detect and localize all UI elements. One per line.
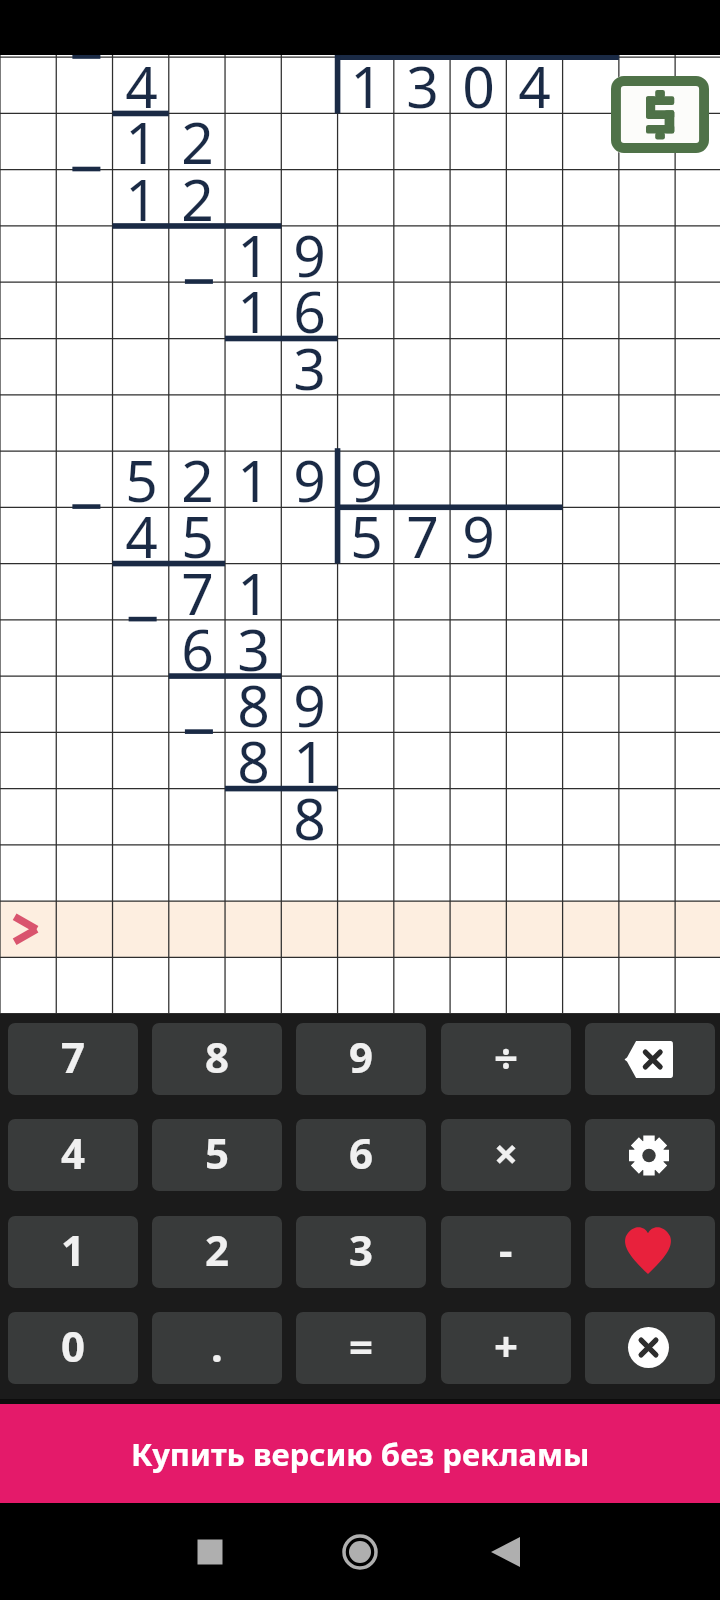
button[interactable]: 3 bbox=[296, 1216, 426, 1288]
staticText: 5 bbox=[350, 497, 383, 575]
button[interactable]: 8 bbox=[152, 1023, 282, 1095]
button[interactable]: Settings bbox=[585, 1119, 715, 1191]
staticText: 4 bbox=[125, 47, 158, 125]
staticText: 9 bbox=[293, 216, 326, 294]
button[interactable]: - bbox=[441, 1216, 571, 1288]
button[interactable]: Купить версию без рекламы bbox=[0, 1404, 720, 1503]
staticText: 2 bbox=[181, 103, 214, 181]
staticText: 7 bbox=[61, 1028, 86, 1085]
button[interactable]: Favourite bbox=[585, 1216, 715, 1288]
staticText: 0 bbox=[462, 47, 495, 125]
staticText: 3 bbox=[406, 47, 439, 125]
staticText: ÷ bbox=[494, 1028, 519, 1085]
staticText: 4 bbox=[125, 497, 158, 575]
staticText: 8 bbox=[237, 666, 270, 744]
staticText: 9 bbox=[350, 441, 383, 519]
staticText: - bbox=[499, 1221, 513, 1278]
staticText: 1 bbox=[350, 47, 383, 125]
staticText: = bbox=[349, 1317, 374, 1374]
button[interactable]: 0 bbox=[8, 1312, 138, 1384]
button[interactable]: × bbox=[441, 1119, 571, 1191]
staticText: 6 bbox=[181, 610, 214, 688]
staticText: 8 bbox=[205, 1028, 230, 1085]
staticText: 8 bbox=[293, 779, 326, 857]
button[interactable]: 1 bbox=[8, 1216, 138, 1288]
button[interactable]: 7 bbox=[8, 1023, 138, 1095]
button[interactable]: Buy full version bbox=[611, 76, 709, 153]
staticText: 6 bbox=[293, 272, 326, 350]
staticText: Купить версию без рекламы bbox=[131, 1433, 590, 1475]
staticText: 2 bbox=[181, 160, 214, 238]
button[interactable]: 6 bbox=[296, 1119, 426, 1191]
staticText: 0 bbox=[61, 1317, 86, 1374]
staticText: 1 bbox=[125, 160, 158, 238]
staticText: 5 bbox=[181, 497, 214, 575]
button[interactable]: 2 bbox=[152, 1216, 282, 1288]
button[interactable]: 9 bbox=[296, 1023, 426, 1095]
staticText: 8 bbox=[237, 722, 270, 800]
staticText: 9 bbox=[293, 666, 326, 744]
button[interactable]: + bbox=[441, 1312, 571, 1384]
staticText: . bbox=[211, 1317, 223, 1374]
staticText: 1 bbox=[237, 554, 270, 632]
staticText: 3 bbox=[349, 1221, 374, 1278]
staticText: 4 bbox=[61, 1124, 86, 1181]
staticText: 5 bbox=[205, 1124, 230, 1181]
staticText: 7 bbox=[406, 497, 439, 575]
staticText: 2 bbox=[205, 1221, 230, 1278]
staticText: 3 bbox=[237, 610, 270, 688]
staticText: 1 bbox=[125, 103, 158, 181]
button[interactable]: 5 bbox=[152, 1119, 282, 1191]
button[interactable]: Backspace bbox=[585, 1023, 715, 1095]
staticText: 9 bbox=[293, 441, 326, 519]
button[interactable]: 4 bbox=[0, 0, 720, 1014]
button[interactable]: 4 bbox=[8, 1119, 138, 1191]
staticText: 1 bbox=[61, 1221, 86, 1278]
staticText: 1 bbox=[237, 216, 270, 294]
staticText: 9 bbox=[349, 1028, 374, 1085]
button[interactable]: Clear bbox=[585, 1312, 715, 1384]
staticText: 6 bbox=[349, 1124, 374, 1181]
staticText: 9 bbox=[462, 497, 495, 575]
staticText: 3 bbox=[293, 329, 326, 407]
staticText: 7 bbox=[181, 554, 214, 632]
staticText: 5 bbox=[125, 441, 158, 519]
button[interactable]: . bbox=[152, 1312, 282, 1384]
button[interactable]: ÷ bbox=[441, 1023, 571, 1095]
staticText: + bbox=[494, 1317, 519, 1374]
staticText: 1 bbox=[237, 441, 270, 519]
staticText: 1 bbox=[293, 722, 326, 800]
staticText: 4 bbox=[518, 47, 551, 125]
staticText: × bbox=[494, 1124, 519, 1181]
button[interactable]: = bbox=[296, 1312, 426, 1384]
staticText: 1 bbox=[237, 272, 270, 350]
staticText: 2 bbox=[181, 441, 214, 519]
